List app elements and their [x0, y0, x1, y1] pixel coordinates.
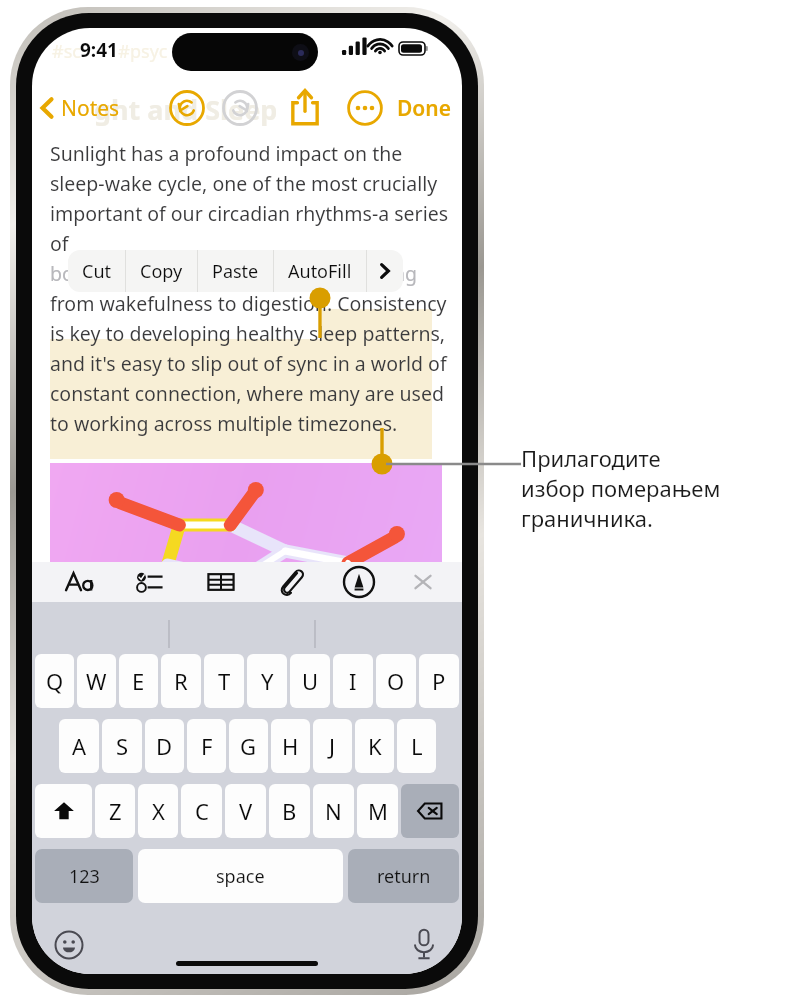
staticText: K: [368, 731, 382, 761]
staticText: R: [174, 666, 188, 696]
button[interactable]: Emoji: [54, 930, 84, 960]
button[interactable]: Q: [35, 654, 74, 708]
button[interactable]: X: [138, 784, 178, 838]
staticText: F: [201, 731, 213, 761]
button[interactable]: Dictate: [410, 927, 438, 961]
button[interactable]: O: [376, 654, 416, 708]
button[interactable]: Y: [247, 654, 287, 708]
button[interactable]: S: [102, 719, 142, 773]
button[interactable]: Undo: [169, 90, 205, 126]
staticText: N: [325, 796, 342, 826]
staticText: of: [50, 230, 414, 260]
button[interactable]: Cut: [68, 250, 125, 292]
button[interactable]: I: [333, 654, 373, 708]
button[interactable]: C: [181, 784, 222, 838]
button[interactable]: K: [355, 719, 394, 773]
button[interactable]: Paste: [198, 250, 273, 292]
staticText: Q: [46, 666, 64, 696]
staticText: is key to developing healthy sleep patte…: [50, 320, 446, 350]
staticText: Y: [261, 666, 274, 696]
button[interactable]: F: [187, 719, 226, 773]
staticText: AutoFill: [288, 259, 352, 284]
staticText: M: [368, 796, 388, 826]
button[interactable]: Delete: [401, 784, 459, 838]
button[interactable]: Markup: [342, 565, 376, 599]
button[interactable]: More actions: [367, 250, 403, 292]
button[interactable]: Shift: [35, 784, 92, 838]
button[interactable]: W: [77, 654, 116, 708]
button[interactable]: Z: [95, 784, 135, 838]
staticText: H: [282, 731, 299, 761]
staticText: Done: [397, 94, 452, 123]
staticText: 9:41: [80, 37, 118, 63]
staticText: to working across multiple timezones.: [50, 410, 398, 440]
button[interactable]: 123: [35, 849, 133, 903]
staticText: Z: [109, 796, 122, 826]
staticText: important of our circadian rhythms-a ser…: [50, 200, 448, 230]
button[interactable]: A: [59, 719, 99, 773]
staticText: A: [72, 731, 87, 761]
button[interactable]: Redo: [222, 90, 258, 126]
staticText: space: [216, 864, 265, 889]
button[interactable]: space: [138, 849, 343, 903]
staticText: from wakefulness to digestion. Consisten…: [50, 290, 447, 320]
staticText: X: [152, 796, 165, 826]
button[interactable]: Text format: [64, 565, 98, 599]
button[interactable]: H: [271, 719, 310, 773]
staticText: 123: [69, 864, 100, 889]
button[interactable]: L: [397, 719, 436, 773]
staticText: Copy: [140, 259, 183, 284]
button[interactable]: G: [229, 719, 268, 773]
staticText: C: [195, 796, 209, 826]
button[interactable]: More options: [347, 90, 383, 126]
staticText: G: [240, 731, 257, 761]
button[interactable]: Close: [406, 565, 440, 599]
staticText: Sunlight has a profound impact on the: [50, 140, 403, 170]
staticText: S: [116, 731, 129, 761]
staticText: L: [411, 731, 423, 761]
button[interactable]: E: [119, 654, 158, 708]
staticText: E: [132, 666, 145, 696]
button[interactable]: Copy: [126, 250, 197, 292]
button[interactable]: Table: [204, 565, 238, 599]
button[interactable]: [50, 463, 442, 563]
button[interactable]: T: [204, 654, 244, 708]
button[interactable]: R: [161, 654, 201, 708]
staticText: U: [302, 666, 319, 696]
button[interactable]: D: [145, 719, 184, 773]
staticText: and it's easy to slip out of sync in a w…: [50, 350, 447, 380]
staticText: sleep-wake cycle, one of the most crucia…: [50, 170, 438, 200]
button[interactable]: M: [357, 784, 398, 838]
staticText: bodies' functions to optimize everything: [50, 260, 418, 290]
staticText: V: [239, 796, 253, 826]
staticText: B: [282, 796, 297, 826]
staticText: J: [329, 731, 336, 761]
staticText: Notes: [61, 94, 120, 123]
staticText: I: [349, 666, 357, 696]
button[interactable]: Done: [389, 88, 460, 128]
staticText: P: [432, 666, 446, 696]
button[interactable]: Share: [286, 86, 324, 128]
staticText: Cut: [82, 259, 111, 284]
button[interactable]: N: [313, 784, 354, 838]
staticText: ght and Sleep: [94, 91, 278, 128]
button[interactable]: B: [269, 784, 310, 838]
button[interactable]: Attach: [274, 565, 308, 599]
staticText: Paste: [212, 259, 259, 284]
staticText: #sc #psyc: [52, 39, 168, 64]
button[interactable]: P: [419, 654, 459, 708]
button[interactable]: U: [290, 654, 330, 708]
button[interactable]: Checklist: [134, 565, 168, 599]
staticText: return: [377, 864, 431, 889]
staticText: constant connection, where many are used: [50, 380, 444, 410]
button[interactable]: Notes: [34, 88, 124, 128]
staticText: W: [86, 666, 107, 696]
staticText: Прилагодите избор померањем граничника.: [521, 443, 721, 533]
button[interactable]: AutoFill: [274, 250, 366, 292]
staticText: T: [218, 666, 231, 696]
staticText: O: [387, 666, 405, 696]
button[interactable]: J: [313, 719, 352, 773]
button[interactable]: V: [225, 784, 266, 838]
staticText: D: [156, 731, 173, 761]
button[interactable]: return: [348, 849, 459, 903]
